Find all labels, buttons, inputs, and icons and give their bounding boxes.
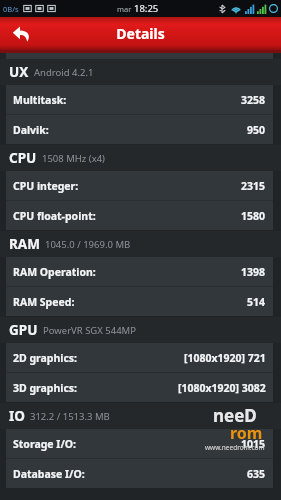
button[interactable]: CPU integer:	[6, 171, 273, 200]
staticText: PowerVR SGX 544MP	[43, 324, 136, 337]
staticText: www.needrom.com	[205, 443, 265, 452]
button[interactable]: RAM Speed:	[6, 287, 273, 316]
staticText: 514	[247, 295, 266, 309]
staticText: IO	[9, 407, 25, 425]
staticText: Android 4.2.1	[34, 66, 94, 79]
staticText: Database I/O:	[13, 467, 85, 481]
staticText: 1398	[241, 265, 266, 279]
staticText: [1080x1920] 3082	[178, 381, 266, 395]
staticText: 1508 MHz (x4)	[42, 152, 105, 165]
button[interactable]: 3D graphics:	[6, 373, 273, 402]
staticText: 18:25	[134, 2, 159, 15]
button[interactable]: Dalvik:	[6, 115, 273, 144]
button[interactable]: Database I/O:	[6, 459, 273, 488]
staticText: 3D graphics:	[13, 381, 78, 395]
staticText: UX	[9, 63, 29, 81]
staticText: Details	[116, 24, 165, 43]
button[interactable]: Back	[0, 17, 42, 50]
staticText: 2315	[241, 179, 266, 193]
button[interactable]: CPU float-point:	[6, 201, 273, 230]
button[interactable]: 2D graphics:	[6, 343, 273, 372]
staticText: GPU	[9, 321, 38, 339]
staticText: neeD	[213, 404, 257, 427]
staticText: Multitask:	[13, 93, 67, 107]
staticText: rom	[230, 422, 263, 444]
staticText: 2D graphics:	[13, 351, 78, 365]
staticText: [1080x1920] 721	[184, 351, 266, 365]
staticText: 312.2 / 1513.3 MB	[30, 410, 110, 423]
staticText: mar	[117, 4, 134, 14]
staticText: 1580	[241, 209, 266, 223]
staticText: 1015	[241, 437, 266, 451]
staticText: 635	[247, 467, 266, 481]
staticText: RAM	[9, 235, 40, 253]
staticText: RAM Operation:	[13, 265, 96, 279]
staticText: CPU integer:	[13, 179, 79, 193]
button[interactable]: RAM Operation:	[6, 257, 273, 286]
staticText: 3258	[241, 93, 266, 107]
staticText: CPU float-point:	[13, 209, 96, 223]
staticText: CPU	[9, 149, 37, 167]
staticText: 950	[247, 123, 266, 137]
button[interactable]: Multitask:	[6, 85, 273, 114]
staticText: RAM Speed:	[13, 295, 75, 309]
staticText: 0B/s	[3, 4, 19, 14]
staticText: Storage I/O:	[13, 437, 77, 451]
button[interactable]: Storage I/O:	[6, 429, 273, 458]
staticText: Dalvik:	[13, 123, 49, 137]
staticText: 1045.0 / 1969.0 MB	[45, 238, 131, 251]
